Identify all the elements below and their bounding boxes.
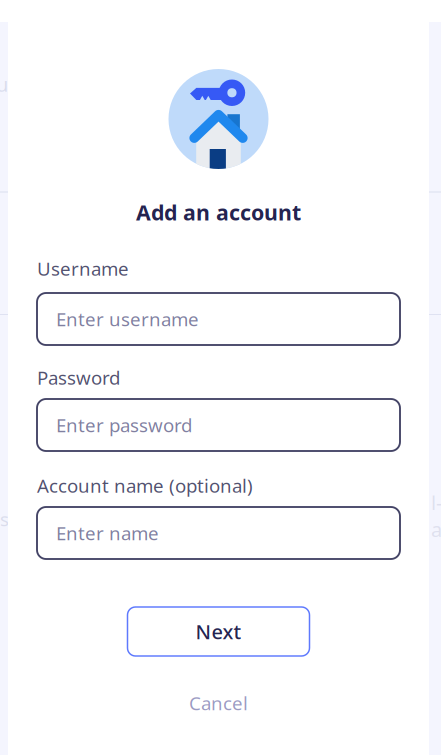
staticText: Next — [195, 618, 241, 645]
button[interactable]: Next — [127, 607, 309, 656]
button[interactable]: Enter username — [37, 293, 400, 345]
staticText: Enter password — [56, 413, 192, 437]
button[interactable]: Cancel — [158, 684, 278, 722]
staticText: Username — [37, 256, 129, 281]
button[interactable]: Enter name — [37, 507, 400, 559]
staticText: Password — [37, 365, 120, 390]
staticText: Account name (optional) — [37, 473, 253, 498]
staticText: u — [0, 71, 8, 97]
staticText: Add an account — [136, 198, 301, 226]
staticText: s — [0, 507, 9, 531]
staticText: la — [431, 489, 441, 542]
staticText: Enter name — [56, 521, 159, 545]
staticText: Enter username — [56, 307, 199, 331]
button[interactable]: Enter password — [37, 399, 400, 451]
staticText: Cancel — [189, 691, 248, 715]
